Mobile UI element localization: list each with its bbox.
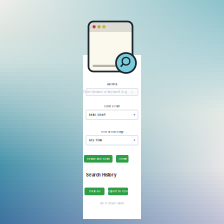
staticText: Basic Chart xyxy=(88,113,105,116)
staticText: ▾ xyxy=(133,113,135,117)
button[interactable]: Export to CSV xyxy=(108,188,128,195)
button[interactable]: Basic Chart xyxy=(86,110,138,119)
button[interactable]: Enter domain or keyword (e.g. ...) xyxy=(86,88,138,95)
staticText: Any Time xyxy=(88,139,102,142)
staticText: Select a Chart xyxy=(104,105,120,108)
staticText: Enter domain or keyword (e.g. ...) xyxy=(83,90,133,94)
staticText: ▾ xyxy=(133,138,135,142)
staticText: Clear All xyxy=(88,190,100,193)
staticText: Export to CSV xyxy=(108,190,128,193)
staticText: Web Portal xyxy=(106,83,117,86)
button[interactable]: Any Time xyxy=(86,135,138,145)
staticText: Search and Chart xyxy=(87,157,110,160)
staticText: Search History xyxy=(86,173,116,178)
button[interactable]: Try Me xyxy=(116,155,128,163)
staticText: Try Me xyxy=(118,157,126,160)
button[interactable]: Clear All xyxy=(84,188,104,195)
staticText: Built by Compare Solutions xyxy=(100,202,124,205)
staticText: Filter by Date Range xyxy=(101,131,123,133)
button[interactable]: Search and Chart xyxy=(84,155,112,163)
